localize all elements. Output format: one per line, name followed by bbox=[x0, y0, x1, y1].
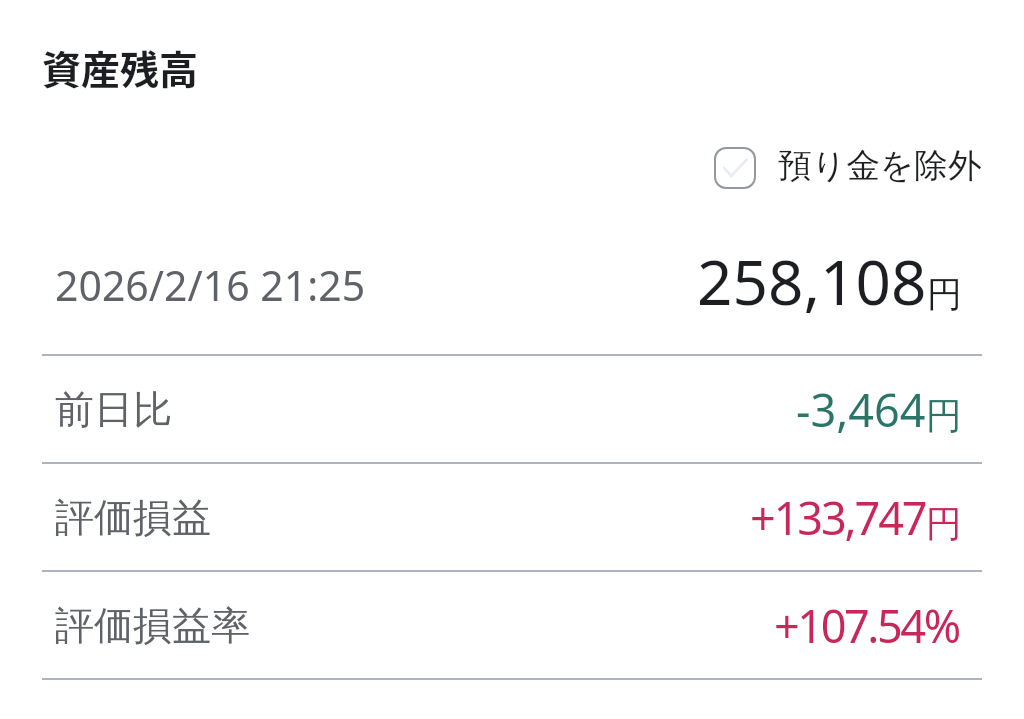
other: 預り金を除外 bbox=[714, 147, 756, 189]
staticText: 評価損益 bbox=[55, 493, 211, 542]
staticText: 預り金を除外 bbox=[778, 145, 982, 187]
button[interactable]: 評価損益率 bbox=[0, 572, 1024, 678]
staticText: 円 bbox=[926, 393, 962, 438]
staticText: 前日比 bbox=[55, 385, 172, 434]
staticText: 2026/2/16 21:25 bbox=[55, 257, 366, 313]
button[interactable]: 預り金を除外 bbox=[714, 145, 982, 187]
button[interactable]: 評価損益 bbox=[0, 464, 1024, 570]
staticText: 円 bbox=[927, 272, 962, 316]
staticText: 資産残高 bbox=[42, 39, 199, 95]
staticText: 258,108 bbox=[697, 239, 927, 323]
staticText: +133,747 bbox=[750, 487, 926, 548]
button[interactable]: 前日比 bbox=[0, 356, 1024, 462]
staticText: +107.54% bbox=[774, 595, 959, 656]
staticText: 円 bbox=[926, 501, 962, 546]
staticText: -3,464 bbox=[796, 379, 926, 440]
staticText: 評価損益率 bbox=[55, 601, 250, 650]
